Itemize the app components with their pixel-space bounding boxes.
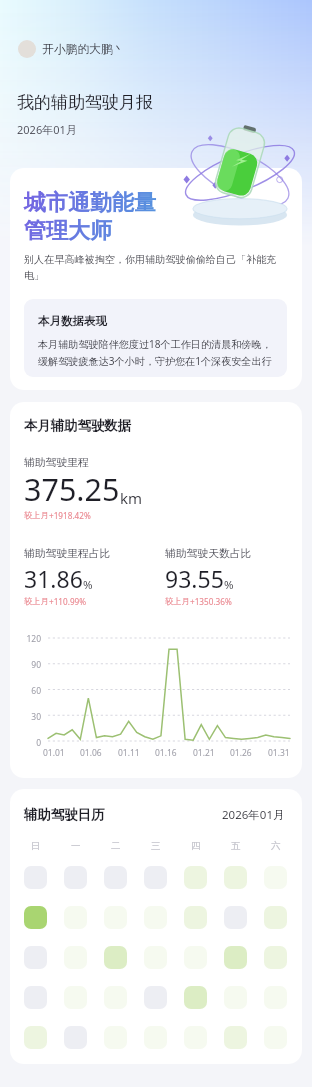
button[interactable]: [264, 866, 287, 889]
staticText: +110.99%: [49, 596, 87, 607]
staticText: 01.21: [193, 747, 215, 759]
button[interactable]: [264, 1026, 287, 1049]
staticText: 本月辅助驾驶数据: [24, 417, 132, 434]
button[interactable]: [184, 866, 207, 889]
staticText: 辅助驾驶日历: [24, 806, 105, 823]
button[interactable]: [24, 986, 47, 1009]
other: Battery energy illustration: [178, 118, 302, 230]
button[interactable]: [104, 946, 127, 969]
button[interactable]: [144, 906, 167, 929]
staticText: 开小鹏的大鹏丶: [42, 42, 125, 57]
staticText: 01.31: [268, 747, 290, 759]
button[interactable]: [64, 1026, 87, 1049]
button[interactable]: [24, 946, 47, 969]
button[interactable]: [264, 906, 287, 929]
staticText: 辅助驾驶里程占比: [24, 547, 111, 561]
staticText: +1350.36%: [190, 596, 232, 607]
staticText: 五: [231, 840, 241, 852]
button[interactable]: [64, 986, 87, 1009]
button[interactable]: [144, 946, 167, 969]
button[interactable]: [24, 866, 47, 889]
button[interactable]: [104, 986, 127, 1009]
staticText: 较上月: [24, 596, 49, 606]
button[interactable]: [184, 906, 207, 929]
button[interactable]: [144, 986, 167, 1009]
staticText: 四: [191, 840, 201, 852]
button[interactable]: 开小鹏的大鹏丶: [18, 40, 125, 58]
staticText: 我的辅助驾驶月报: [17, 92, 153, 113]
staticText: %: [83, 577, 93, 593]
button[interactable]: [144, 1026, 167, 1049]
button[interactable]: [184, 1026, 207, 1049]
staticText: 01.16: [155, 747, 177, 759]
button[interactable]: [104, 906, 127, 929]
staticText: 2026年01月: [17, 122, 77, 137]
button[interactable]: [224, 1026, 247, 1049]
staticText: 120: [20, 633, 41, 645]
staticText: 30: [20, 711, 41, 723]
staticText: 375.25: [24, 468, 120, 510]
button[interactable]: [24, 1026, 47, 1049]
staticText: 2026年01月: [222, 807, 285, 823]
staticText: 60: [20, 685, 41, 697]
button[interactable]: [184, 986, 207, 1009]
staticText: 90: [20, 659, 41, 671]
button[interactable]: [104, 866, 127, 889]
staticText: 01.26: [230, 747, 252, 759]
staticText: 较上月: [165, 596, 190, 606]
button[interactable]: [10, 789, 302, 1064]
button[interactable]: [10, 402, 302, 778]
button[interactable]: [184, 946, 207, 969]
staticText: 城市通勤能量 管理大师: [24, 189, 156, 244]
staticText: 93.55: [165, 563, 224, 594]
staticText: 六: [271, 840, 281, 852]
staticText: +1918.42%: [49, 510, 91, 521]
staticText: 辅助驾驶里程: [24, 456, 89, 470]
button[interactable]: [264, 986, 287, 1009]
button[interactable]: [224, 986, 247, 1009]
staticText: 较上月: [24, 510, 49, 520]
button[interactable]: [64, 946, 87, 969]
staticText: 31.86: [24, 563, 83, 594]
button[interactable]: [104, 1026, 127, 1049]
staticText: %: [224, 577, 234, 593]
staticText: 本月数据表现: [38, 314, 107, 328]
staticText: 01.06: [80, 747, 102, 759]
button[interactable]: [24, 906, 47, 929]
staticText: 01.11: [118, 747, 140, 759]
staticText: 01.01: [43, 747, 65, 759]
button[interactable]: [10, 168, 302, 390]
button[interactable]: [144, 866, 167, 889]
button[interactable]: [224, 866, 247, 889]
staticText: 0: [20, 737, 41, 749]
staticText: km: [120, 488, 143, 508]
button[interactable]: [264, 946, 287, 969]
button[interactable]: [64, 906, 87, 929]
button[interactable]: [64, 866, 87, 889]
staticText: 日: [31, 840, 41, 852]
staticText: 三: [151, 840, 161, 852]
staticText: 一: [71, 840, 81, 852]
button[interactable]: [224, 906, 247, 929]
staticText: 本月辅助驾驶陪伴您度过18个工作日的清晨和傍晚，缓解驾驶疲惫达3个小时，守护您在…: [38, 337, 273, 368]
staticText: 别人在早高峰被掏空，你用辅助驾驶偷偷给自己「补能充电」: [24, 253, 279, 282]
staticText: 二: [111, 840, 121, 852]
staticText: 辅助驾驶天数占比: [165, 547, 252, 561]
button[interactable]: [224, 946, 247, 969]
